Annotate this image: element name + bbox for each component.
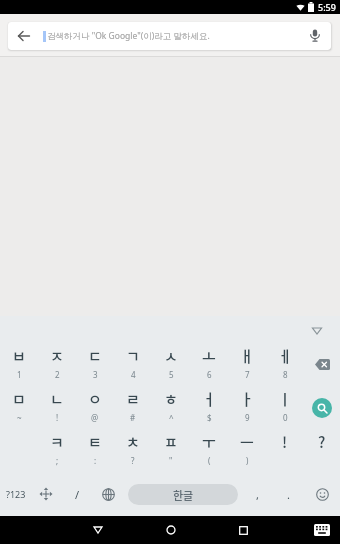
- staticText: (: [208, 455, 211, 466]
- staticText: ㅔ: [278, 345, 292, 367]
- button[interactable]: ?: [304, 429, 340, 472]
- staticText: ㅂ: [12, 345, 26, 367]
- staticText: ㅗ: [202, 345, 216, 367]
- button[interactable]: ㅗ: [190, 343, 228, 386]
- button[interactable]: .: [272, 472, 304, 516]
- button[interactable]: [18, 30, 30, 42]
- button[interactable]: ㄴ: [38, 386, 76, 429]
- staticText: 2: [55, 369, 60, 380]
- button[interactable]: [61, 516, 134, 544]
- button[interactable]: ㅇ: [76, 386, 114, 429]
- button[interactable]: ㅋ: [38, 429, 76, 472]
- button[interactable]: ㅎ: [152, 386, 190, 429]
- staticText: 9: [245, 412, 250, 423]
- button[interactable]: ㅍ: [152, 429, 190, 472]
- button[interactable]: ㄹ: [114, 386, 152, 429]
- staticText: 4: [131, 369, 136, 380]
- button[interactable]: ㄱ: [114, 343, 152, 386]
- staticText: ㅇ: [88, 388, 102, 410]
- staticText: !: [56, 412, 59, 423]
- staticText: :: [94, 455, 97, 466]
- staticText: .: [287, 487, 290, 502]
- button[interactable]: [134, 516, 207, 544]
- button[interactable]: ㅊ: [114, 429, 152, 472]
- button[interactable]: [309, 29, 321, 43]
- staticText: ?: [131, 455, 135, 466]
- staticText: ㅓ: [202, 388, 216, 410]
- button[interactable]: ㅁ: [0, 386, 38, 429]
- button[interactable]: ㅐ: [228, 343, 266, 386]
- staticText: ㅌ: [88, 431, 102, 453]
- staticText: ?123: [6, 488, 26, 500]
- staticText: 검색하거나 "Ok Google"(이)라고 말하세요.: [47, 30, 210, 42]
- button[interactable]: [207, 516, 280, 544]
- staticText: ㄴ: [50, 388, 64, 410]
- staticText: 3: [93, 369, 98, 380]
- button[interactable]: ㄷ: [76, 343, 114, 386]
- staticText: ": [169, 455, 173, 466]
- button[interactable]: [304, 386, 340, 429]
- staticText: ^: [169, 412, 174, 423]
- button[interactable]: 한글: [128, 472, 238, 516]
- staticText: ㅊ: [126, 431, 140, 453]
- staticText: ;: [56, 455, 59, 466]
- button[interactable]: ㅂ: [0, 343, 38, 386]
- staticText: 한글: [173, 487, 194, 503]
- staticText: ㅁ: [12, 388, 26, 410]
- button[interactable]: !: [266, 429, 304, 472]
- staticText: ㅋ: [50, 431, 64, 453]
- staticText: $: [207, 412, 212, 423]
- button[interactable]: ,: [242, 472, 272, 516]
- staticText: @: [91, 412, 99, 423]
- button[interactable]: ㅜ: [190, 429, 228, 472]
- staticText: ㅎ: [164, 388, 178, 410]
- staticText: ㄱ: [126, 345, 140, 367]
- staticText: ㄷ: [88, 345, 102, 367]
- button[interactable]: ㅔ: [266, 343, 304, 386]
- staticText: 6: [207, 369, 212, 380]
- button[interactable]: [304, 343, 340, 386]
- staticText: ~: [17, 412, 22, 423]
- staticText: 0: [283, 412, 288, 423]
- staticText: ㅍ: [164, 431, 178, 453]
- button[interactable]: ㅏ: [228, 386, 266, 429]
- staticText: ㅐ: [240, 345, 254, 367]
- staticText: 7: [245, 369, 250, 380]
- staticText: ㅣ: [278, 388, 292, 410]
- button[interactable]: ㅅ: [152, 343, 190, 386]
- button[interactable]: [93, 472, 124, 516]
- staticText: ㄹ: [126, 388, 140, 410]
- staticText: /: [75, 487, 80, 502]
- button[interactable]: ㅣ: [266, 386, 304, 429]
- button[interactable]: [304, 472, 340, 516]
- button[interactable]: [31, 472, 61, 516]
- staticText: ㅏ: [240, 388, 254, 410]
- button[interactable]: 검색하거나 "Ok Google"(이)라고 말하세요.: [8, 22, 331, 50]
- staticText: ,: [256, 487, 259, 502]
- staticText: ㅅ: [164, 345, 178, 367]
- button[interactable]: ㅈ: [38, 343, 76, 386]
- button[interactable]: ?123: [0, 472, 31, 516]
- staticText: ㅡ: [240, 431, 254, 453]
- staticText: 1: [17, 369, 22, 380]
- staticText: #: [130, 412, 136, 423]
- staticText: 5: [169, 369, 174, 380]
- button[interactable]: [304, 516, 340, 544]
- button[interactable]: ㅌ: [76, 429, 114, 472]
- staticText: 5:59: [318, 1, 336, 13]
- staticText: ㅜ: [202, 431, 216, 453]
- button[interactable]: ㅡ: [228, 429, 266, 472]
- staticText: ?: [318, 431, 326, 453]
- staticText: 8: [283, 369, 288, 380]
- button[interactable]: /: [61, 472, 93, 516]
- staticText: ㅈ: [50, 345, 64, 367]
- button[interactable]: ㅓ: [190, 386, 228, 429]
- staticText: !: [282, 431, 288, 453]
- staticText: ): [246, 455, 249, 466]
- button[interactable]: [312, 327, 322, 335]
